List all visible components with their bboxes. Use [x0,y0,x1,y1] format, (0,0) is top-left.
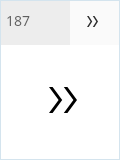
staticText: 187 [6,11,31,30]
button[interactable]: Fast forward [43,80,83,120]
button[interactable]: 187 [1,1,70,45]
button[interactable]: Skip forward [70,1,119,45]
